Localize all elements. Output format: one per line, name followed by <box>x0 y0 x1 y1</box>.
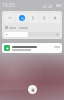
button[interactable]: Bluetooth <box>39 13 49 23</box>
staticText: 18:25 <box>2 2 15 9</box>
staticText: now <box>54 45 60 49</box>
button[interactable] <box>4 31 60 37</box>
button[interactable]: Wi-Fi <box>4 13 15 23</box>
button[interactable]: Mobile data <box>16 13 27 23</box>
button[interactable]: Flashlight <box>28 13 38 23</box>
button[interactable]: Clear all notifications <box>28 85 37 94</box>
button[interactable]: Silent <box>50 13 60 23</box>
button[interactable]: now <box>2 43 62 53</box>
